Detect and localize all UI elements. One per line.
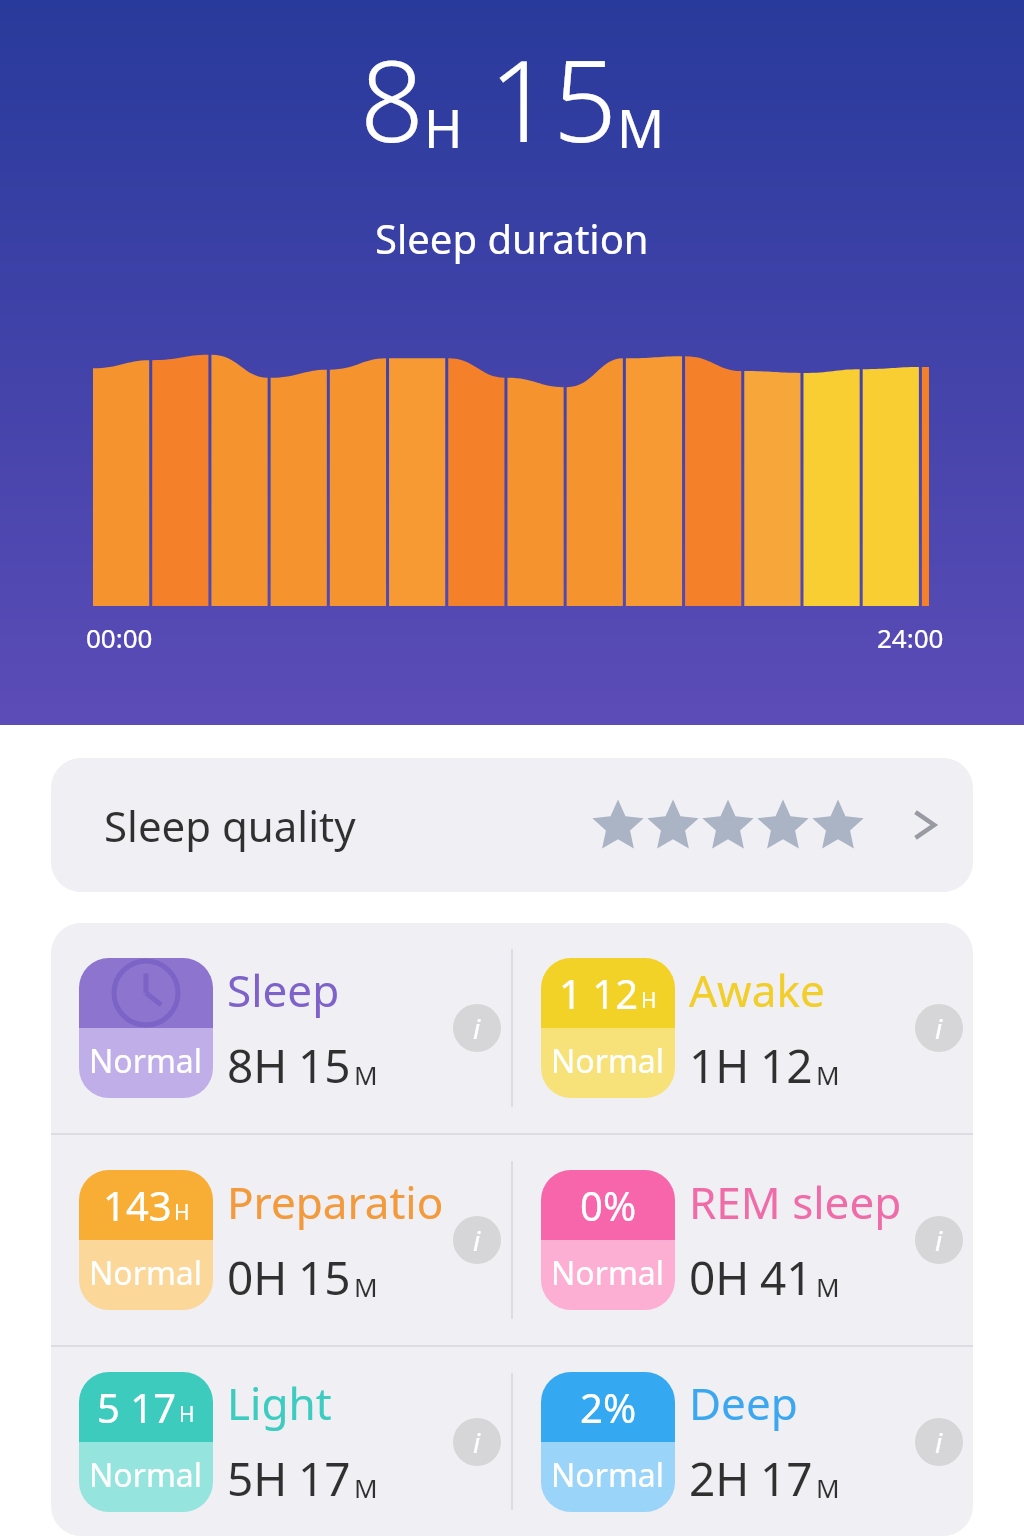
- staticText: 00:00: [86, 620, 153, 655]
- staticText: i: [473, 1423, 481, 1461]
- staticText: H: [641, 986, 657, 1015]
- staticText: 0H: [227, 1246, 288, 1309]
- staticText: Normal: [551, 1251, 665, 1295]
- staticText: M: [617, 92, 665, 163]
- staticText: i: [935, 1009, 943, 1047]
- staticText: 12: [760, 1034, 813, 1097]
- button[interactable]: More information: [915, 1216, 963, 1264]
- staticText: 5H: [227, 1447, 288, 1510]
- staticText: Sleep quality: [104, 797, 356, 854]
- staticText: 17: [298, 1447, 351, 1510]
- staticText: 5 17: [97, 1380, 177, 1434]
- button[interactable]: 0%: [513, 1135, 973, 1345]
- staticText: 8: [360, 22, 424, 175]
- staticText: 17: [760, 1447, 813, 1510]
- staticText: Sleep Dur…: [227, 960, 453, 1020]
- staticText: Normal: [551, 1039, 665, 1083]
- staticText: REM sleep: [689, 1172, 902, 1232]
- button[interactable]: More information: [915, 1418, 963, 1466]
- staticText: Sleep duration: [375, 211, 649, 265]
- staticText: Normal: [89, 1453, 203, 1497]
- button[interactable]: 143: [51, 1135, 511, 1345]
- staticText: Awake: [689, 960, 825, 1020]
- staticText: Normal: [89, 1039, 203, 1083]
- staticText: H: [174, 1198, 190, 1227]
- button[interactable]: Normal: [51, 923, 511, 1133]
- staticText: M: [354, 1057, 378, 1092]
- staticText: Normal: [551, 1453, 665, 1497]
- staticText: i: [935, 1423, 943, 1461]
- button[interactable]: More information: [453, 1418, 501, 1466]
- staticText: 15: [489, 22, 617, 175]
- staticText: M: [816, 1470, 840, 1505]
- staticText: 0%: [580, 1178, 637, 1232]
- staticText: 24:00: [877, 620, 944, 655]
- staticText: Preparatio..: [227, 1172, 453, 1232]
- staticText: M: [354, 1269, 378, 1304]
- staticText: 41: [760, 1246, 813, 1309]
- staticText: M: [816, 1057, 840, 1092]
- staticText: 15: [298, 1034, 351, 1097]
- button[interactable]: More information: [915, 1004, 963, 1052]
- staticText: H: [424, 92, 463, 163]
- staticText: 1H: [689, 1034, 750, 1097]
- staticText: 0H: [689, 1246, 750, 1309]
- staticText: Light Sleep: [227, 1373, 453, 1433]
- staticText: i: [935, 1221, 943, 1259]
- button[interactable]: 2%: [513, 1347, 973, 1536]
- staticText: 2H: [689, 1447, 750, 1510]
- staticText: Deep Slee…: [689, 1373, 915, 1433]
- staticText: Normal: [89, 1251, 203, 1295]
- button[interactable]: More information: [453, 1216, 501, 1264]
- staticText: 8H: [227, 1034, 288, 1097]
- button[interactable]: More information: [453, 1004, 501, 1052]
- button[interactable]: Sleep quality: [51, 758, 973, 892]
- button[interactable]: 5 17: [51, 1347, 511, 1536]
- staticText: i: [473, 1221, 481, 1259]
- staticText: M: [816, 1269, 840, 1304]
- staticText: 1 12: [559, 966, 639, 1020]
- staticText: M: [354, 1470, 378, 1505]
- button[interactable]: 1 12: [513, 923, 973, 1133]
- staticText: H: [179, 1400, 195, 1429]
- staticText: 2%: [580, 1380, 637, 1434]
- staticText: 143: [103, 1178, 172, 1232]
- staticText: i: [473, 1009, 481, 1047]
- staticText: 15: [298, 1246, 351, 1309]
